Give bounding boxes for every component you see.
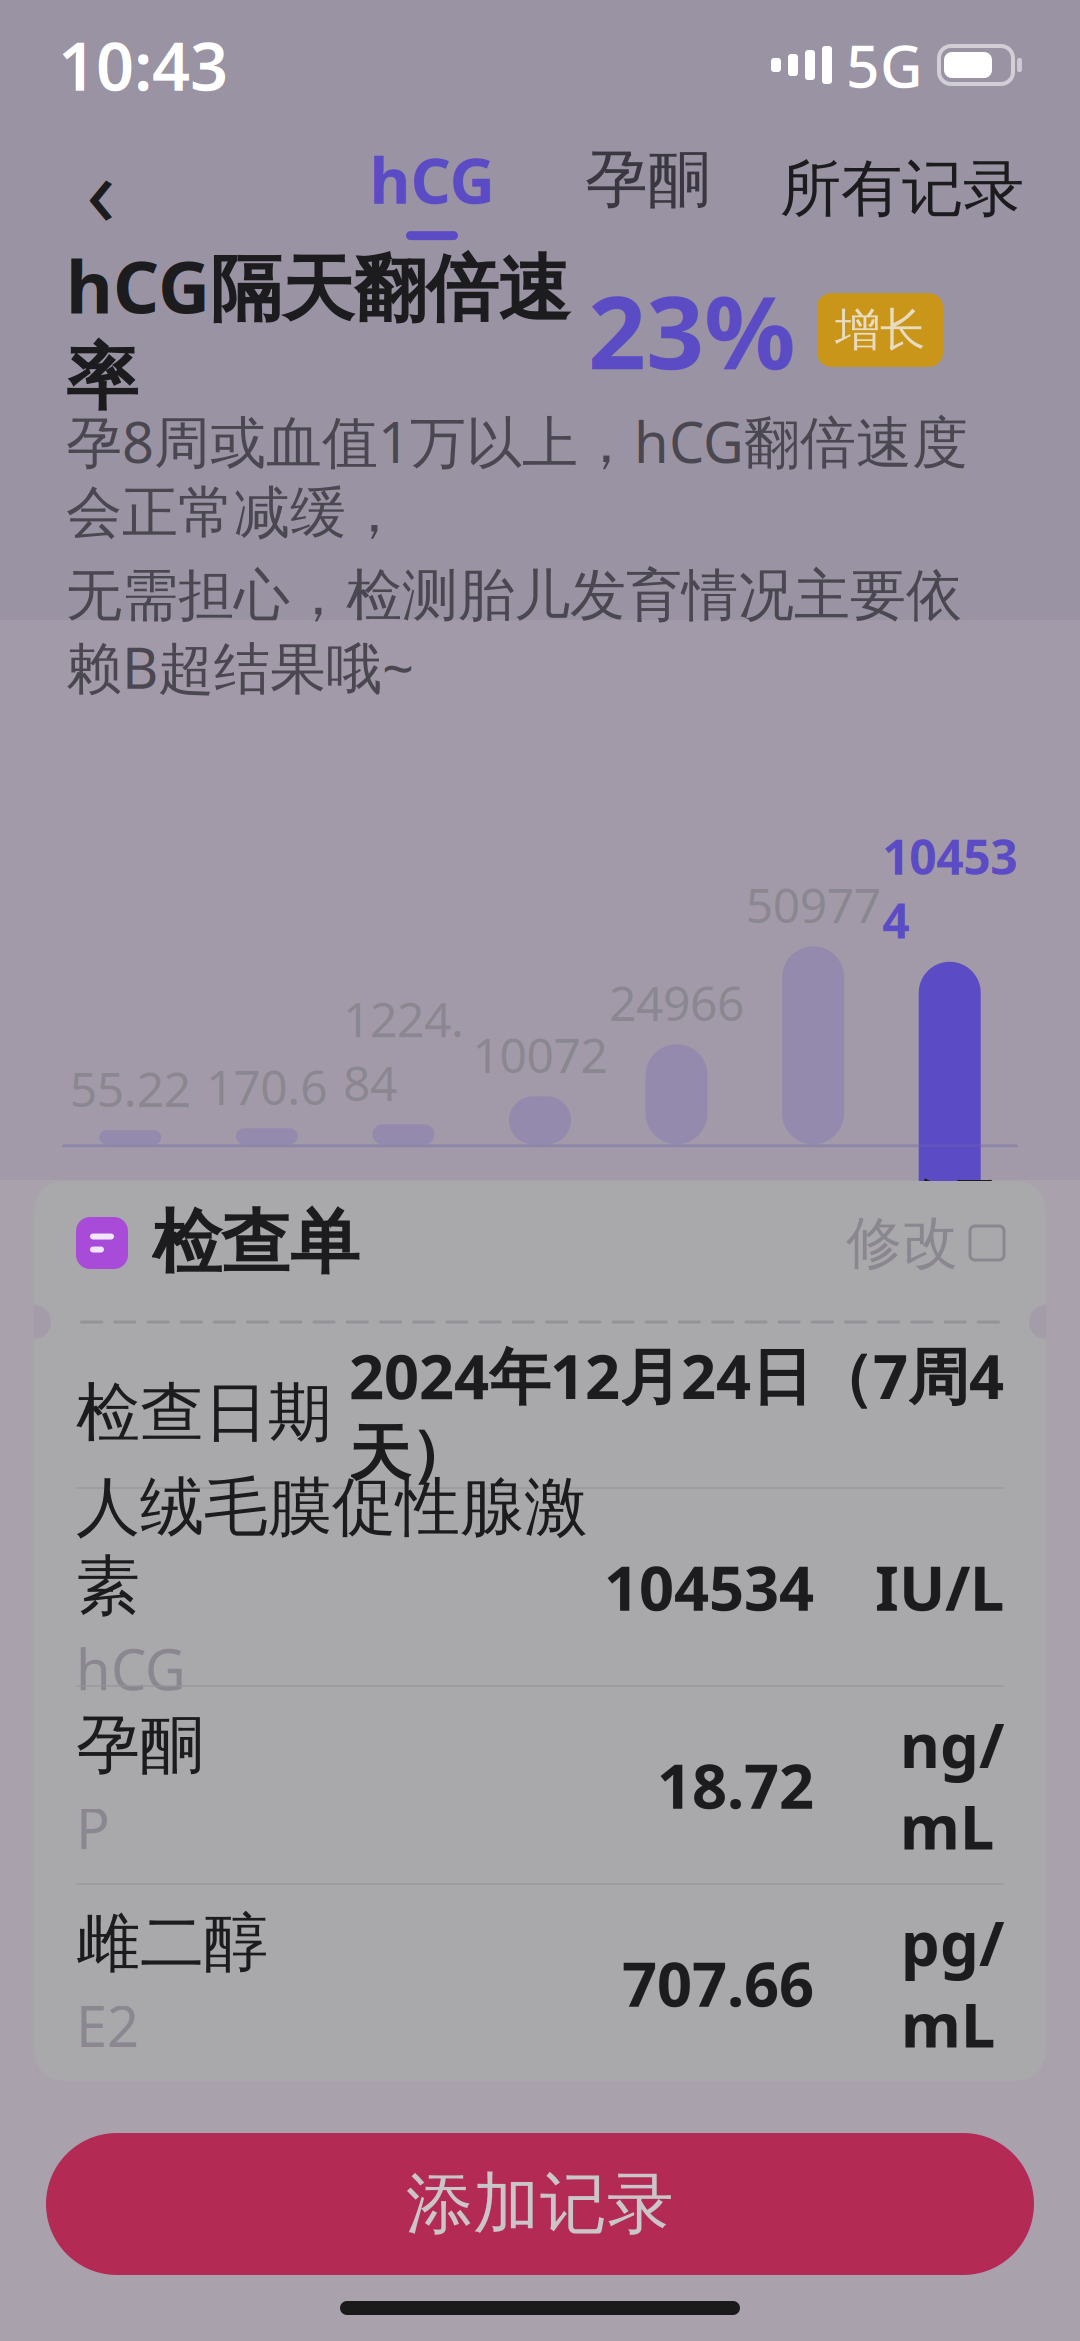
- staticText: 无需担心，检测胎儿发育情况主要依赖B超结果哦~: [66, 561, 962, 704]
- staticText: 增长: [835, 302, 925, 358]
- staticText: ‹: [86, 125, 116, 253]
- staticText: 4周5天: [352, 1243, 454, 1366]
- staticText: 12/12: [614, 1171, 740, 1235]
- staticText: 11/28: [67, 1171, 193, 1235]
- staticText: 707.66: [622, 1942, 814, 2024]
- staticText: hCG隔天翻倍速率: [66, 238, 570, 422]
- staticText: 修改: [846, 1209, 958, 1277]
- staticText: 5周6天: [626, 1243, 728, 1366]
- staticText: 12/9: [490, 1171, 589, 1235]
- button[interactable]: 修改: [846, 1209, 1004, 1277]
- staticText: hCG: [76, 1631, 186, 1706]
- staticText: 11/30: [204, 1171, 330, 1235]
- staticText: 今天: [902, 1174, 998, 1233]
- staticText: 2024年12月24日（7周4天）: [349, 1335, 1004, 1491]
- staticText: 10072: [472, 1023, 607, 1086]
- staticText: 孕8周或血值1万以上，hCG翻倍速度会正常减缓，: [66, 404, 968, 547]
- staticText: 所有记录: [780, 151, 1024, 227]
- button[interactable]: 添加记录: [46, 2133, 1034, 2275]
- staticText: hCG: [369, 138, 494, 221]
- staticText: 50977: [746, 873, 881, 936]
- staticText: 1224.84: [343, 987, 464, 1114]
- staticText: ng/mL: [900, 1704, 1004, 1866]
- staticText: 170.6: [206, 1055, 327, 1118]
- staticText: 18.72: [657, 1744, 814, 1826]
- staticText: 人绒毛膜促性腺激素: [76, 1468, 588, 1625]
- staticText: pg/mL: [901, 1902, 1004, 2064]
- staticText: 12/4: [354, 1171, 453, 1235]
- staticText: 104534: [882, 824, 1017, 952]
- staticText: 5周3天: [489, 1243, 591, 1366]
- button[interactable]: 所有记录: [770, 134, 1034, 244]
- staticText: 7周4天: [899, 1241, 1001, 1363]
- staticText: 4周1天: [216, 1243, 318, 1366]
- staticText: IU/L: [875, 1546, 1004, 1628]
- staticText: P: [76, 1790, 110, 1864]
- staticText: 23%: [588, 263, 795, 397]
- staticText: E2: [76, 1988, 139, 2062]
- staticText: 55.22: [70, 1057, 191, 1120]
- staticText: 检查单: [152, 1200, 359, 1286]
- staticText: 24966: [609, 971, 744, 1034]
- staticText: 孕酮: [585, 141, 711, 218]
- staticText: 5G: [846, 26, 923, 104]
- button[interactable]: Back: [46, 134, 156, 244]
- staticText: 12/17: [750, 1171, 876, 1235]
- staticText: 检查日期: [76, 1374, 332, 1452]
- staticText: 6周4天: [762, 1243, 864, 1366]
- button[interactable]: hCG: [352, 138, 512, 240]
- staticText: 孕酮: [76, 1705, 204, 1784]
- staticText: 3周6天: [79, 1243, 181, 1366]
- button[interactable]: 孕酮: [568, 141, 728, 237]
- staticText: 104534: [604, 1546, 814, 1628]
- staticText: 添加记录: [406, 2163, 674, 2245]
- staticText: 10:43: [58, 21, 228, 109]
- staticText: 雌二醇: [76, 1903, 268, 1982]
